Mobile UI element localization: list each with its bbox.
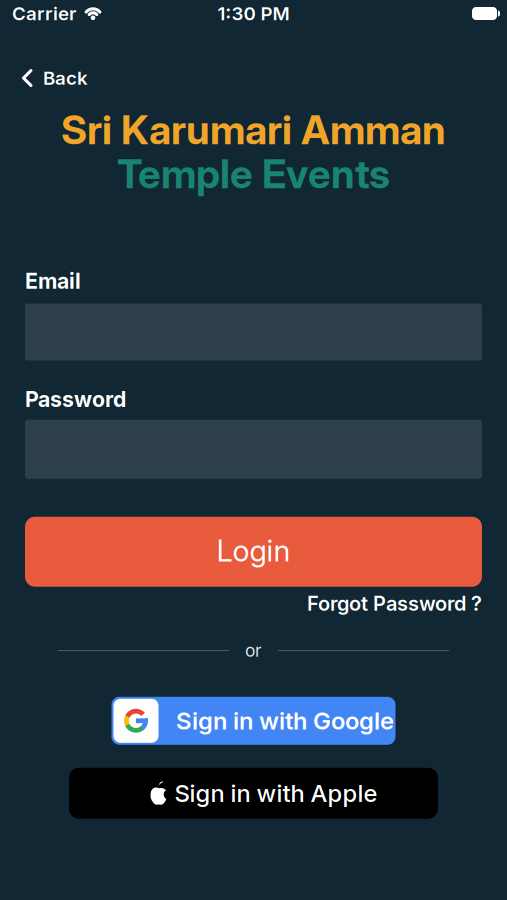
button[interactable]: Sign in with Google [111,697,395,745]
button[interactable]: Login [25,517,482,587]
staticText: Sri Karumari Amman [61,106,446,153]
button[interactable]: Forgot Password ? [307,592,482,615]
staticText: Email [25,268,81,294]
staticText: or [245,640,262,661]
staticText: 1:30 PM [217,2,289,24]
staticText: Forgot Password ? [307,592,482,615]
button[interactable]: Back [22,67,88,89]
staticText: Carrier [12,2,76,24]
staticText: Sign in with Google [176,707,394,735]
staticText: Login [216,533,290,568]
staticText: Temple Events [117,150,390,197]
staticText: Password [25,387,126,412]
staticText: Sign in with Apple [174,779,377,807]
button[interactable]: Sign in with Apple [69,768,438,819]
staticText: Back [43,67,88,89]
